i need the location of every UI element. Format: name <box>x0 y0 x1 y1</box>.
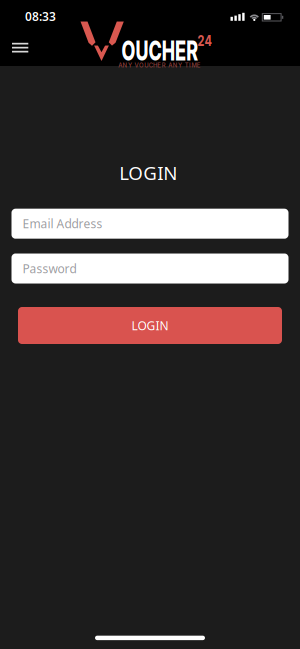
staticText: LOGIN <box>119 160 177 185</box>
button[interactable]: Email Address <box>11 209 288 239</box>
staticText: Password <box>22 260 76 276</box>
button[interactable]: Menu <box>5 35 35 61</box>
staticText: ANY VOUCHER ANY TIME <box>118 62 201 69</box>
staticText: Email Address <box>22 216 102 232</box>
staticText: 24 <box>195 32 214 49</box>
button[interactable]: LOGIN <box>18 307 282 344</box>
staticText: LOGIN <box>131 317 168 333</box>
button[interactable]: Password <box>11 253 288 283</box>
staticText: OUCHER <box>102 34 218 67</box>
staticText: 08:33 <box>25 8 56 24</box>
